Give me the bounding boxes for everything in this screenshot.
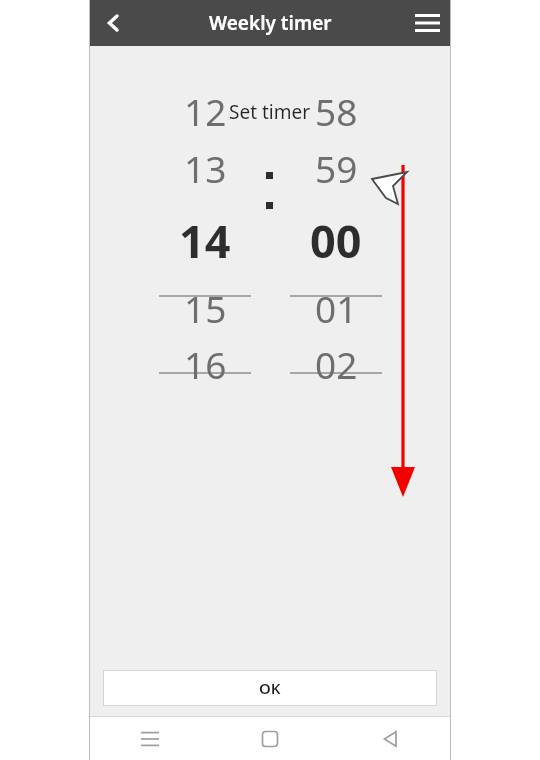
button[interactable]: Home xyxy=(210,717,330,760)
staticText: 59 xyxy=(315,143,358,193)
staticText: 14 xyxy=(179,210,231,270)
button[interactable]: 00 xyxy=(290,210,382,270)
staticText: 01 xyxy=(315,283,358,333)
staticText: Weekly timer xyxy=(209,10,332,36)
button[interactable]: 15 xyxy=(159,282,251,334)
button[interactable]: 13 xyxy=(159,142,251,194)
staticText: OK xyxy=(259,678,281,698)
staticText: 00 xyxy=(310,210,362,270)
staticText: Set timer xyxy=(229,99,311,125)
button[interactable]: 01 xyxy=(290,282,382,334)
button[interactable]: 14 xyxy=(159,210,251,270)
button[interactable]: OK xyxy=(104,671,436,705)
button[interactable]: Back xyxy=(90,0,136,46)
button[interactable]: 12 xyxy=(159,85,251,137)
button[interactable]: Back xyxy=(330,717,450,760)
staticText: 58 xyxy=(315,86,358,136)
button[interactable]: 16 xyxy=(159,338,251,390)
staticText: 15 xyxy=(184,283,227,333)
staticText: 13 xyxy=(184,143,227,193)
staticText: 02 xyxy=(315,339,358,389)
staticText: 16 xyxy=(184,339,227,389)
button[interactable]: 59 xyxy=(290,142,382,194)
button[interactable]: Recents xyxy=(90,717,210,760)
button[interactable]: 58 xyxy=(290,85,382,137)
staticText: 12 xyxy=(184,86,227,136)
button[interactable]: Menu xyxy=(404,0,450,46)
button[interactable]: 02 xyxy=(290,338,382,390)
